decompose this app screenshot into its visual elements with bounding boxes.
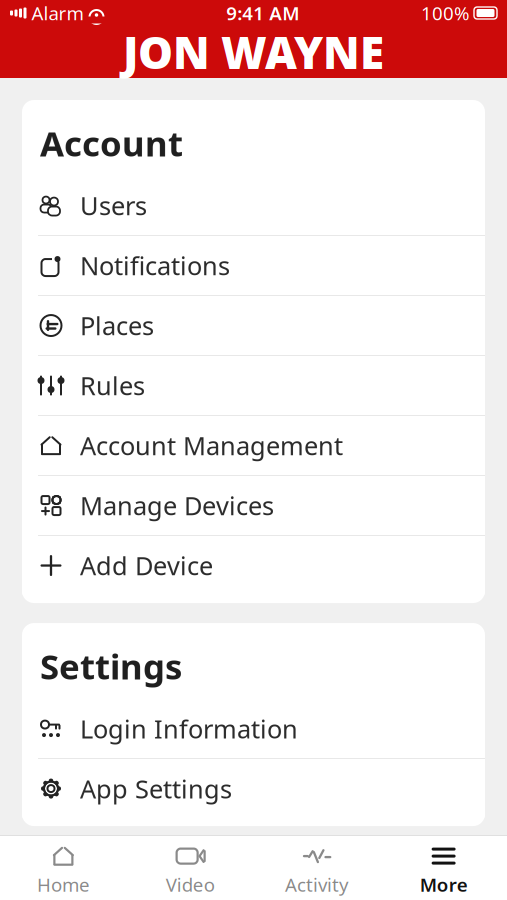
staticText: Settings [40,643,182,689]
staticText: More [420,872,468,897]
staticText: JON WAYNE [123,23,384,81]
staticText: Users [80,189,147,222]
button[interactable]: Places [22,296,485,355]
staticText: About [40,866,146,900]
button[interactable]: Login Information [22,699,485,758]
button[interactable]: More [380,836,507,900]
staticText: Activity [285,872,349,897]
staticText: Account Management [80,429,343,462]
button[interactable]: Add Device [22,536,485,595]
button[interactable]: Home [0,836,127,900]
staticText: 100% [421,1,470,25]
staticText: Account [40,120,183,166]
staticText: Login Information [80,712,298,745]
staticText: App Settings [80,772,232,805]
staticText: Home [37,872,90,897]
button[interactable]: Rules [22,356,485,415]
staticText: Rules [80,369,145,402]
button[interactable]: Account Management [22,416,485,475]
button[interactable]: Notifications [22,236,485,295]
button[interactable]: Users [22,176,485,235]
staticText: Video [166,872,215,897]
button[interactable]: App Settings [22,759,485,818]
staticText: Manage Devices [80,489,274,522]
staticText: Alarm [31,1,83,25]
staticText: Add Device [80,549,213,582]
staticText: 9:41 AM [226,1,299,25]
button[interactable]: Video [127,836,254,900]
button[interactable]: Manage Devices [22,476,485,535]
staticText: Notifications [80,249,230,282]
button[interactable]: Activity [253,836,380,900]
staticText: Places [80,309,154,342]
